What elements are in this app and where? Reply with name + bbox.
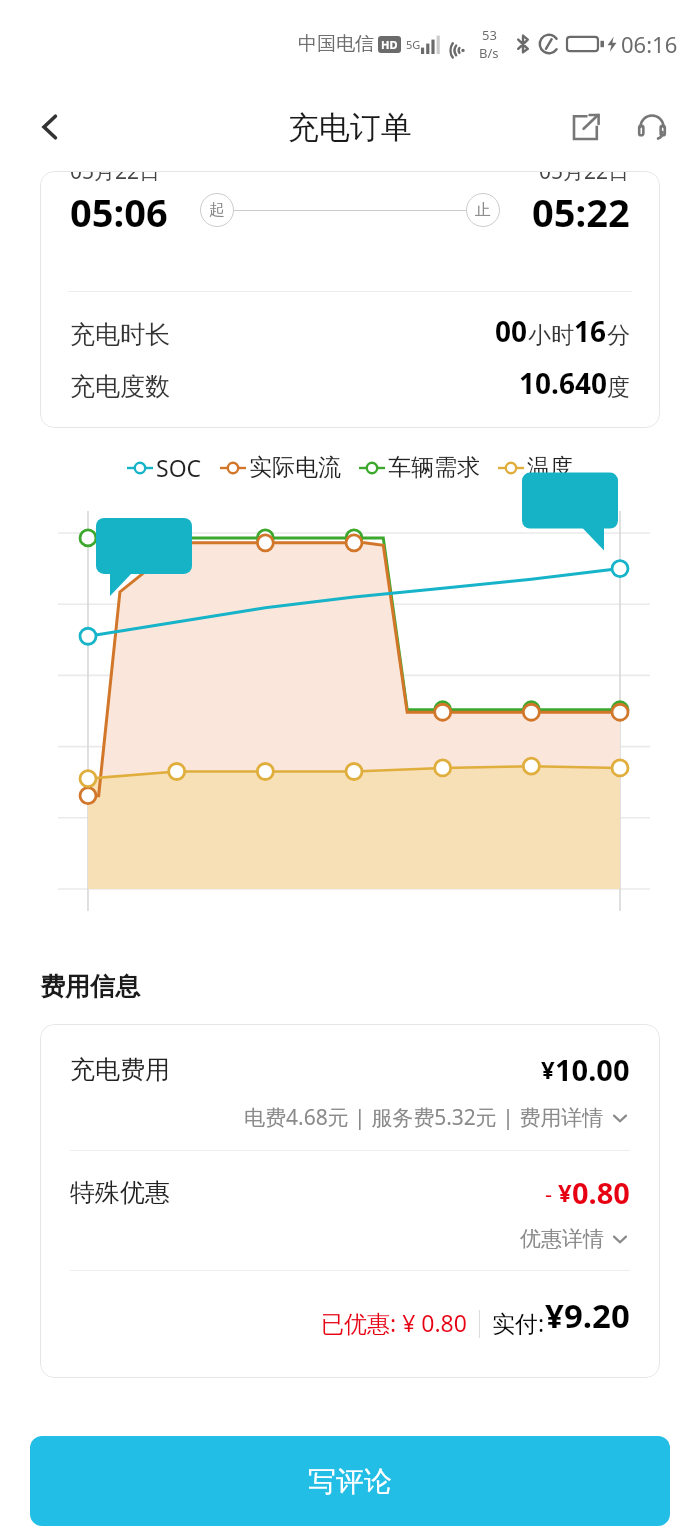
- staticText: 充电时长: [70, 319, 170, 350]
- staticText: 00: [495, 312, 528, 350]
- staticText: 度: [607, 373, 630, 402]
- staticText: 车辆需求: [388, 453, 480, 482]
- staticText: SOC: [156, 452, 202, 483]
- staticText: ¥9.20: [545, 1293, 630, 1338]
- staticText: 5G: [406, 37, 421, 52]
- staticText: 05:22: [532, 186, 630, 238]
- staticText: 温度: [527, 453, 573, 482]
- staticText: 止: [475, 200, 491, 220]
- staticText: ¥: [541, 1053, 555, 1086]
- staticText: 电费4.68元 | 服务费5.32元 | 费用详情: [244, 1103, 604, 1132]
- staticText: 分: [607, 321, 630, 350]
- staticText: 16: [574, 312, 607, 350]
- staticText: -: [545, 1178, 558, 1208]
- staticText: 优惠详情: [520, 1226, 604, 1252]
- staticText: 费用信息: [40, 971, 140, 1002]
- staticText: 05月22日: [539, 171, 630, 186]
- staticText: 10.00: [555, 1050, 630, 1089]
- staticText: 已优惠: ¥ 0.80: [321, 1307, 467, 1338]
- button[interactable]: 电费4.68元 | 服务费5.32元 | 费用详情: [70, 1103, 630, 1132]
- staticText: 中国电信: [298, 32, 374, 56]
- staticText: 0.80: [572, 1173, 630, 1212]
- button[interactable]: Share: [560, 101, 612, 153]
- staticText: 小时: [528, 321, 574, 350]
- staticText: 05:06: [70, 186, 168, 238]
- staticText: 特殊优惠: [70, 1177, 170, 1208]
- staticText: 充电费用: [70, 1054, 170, 1085]
- staticText: 起: [209, 200, 225, 220]
- button[interactable]: Customer service: [626, 101, 678, 153]
- button[interactable]: Back: [22, 99, 78, 155]
- staticText: 06:16: [621, 29, 678, 59]
- staticText: 05月22日: [70, 171, 161, 186]
- button[interactable]: 优惠详情: [70, 1226, 630, 1252]
- button[interactable]: 写评论: [30, 1436, 670, 1526]
- staticText: 实际电流: [249, 453, 341, 482]
- staticText: ¥: [558, 1176, 572, 1209]
- staticText: 10.640: [519, 364, 607, 402]
- staticText: 写评论: [308, 1464, 392, 1499]
- staticText: 53: [482, 26, 497, 44]
- staticText: 充电订单: [288, 108, 412, 147]
- staticText: 实付:: [492, 1307, 545, 1338]
- staticText: HD: [381, 37, 398, 52]
- staticText: 充电度数: [70, 371, 170, 402]
- staticText: B/s: [479, 44, 499, 62]
